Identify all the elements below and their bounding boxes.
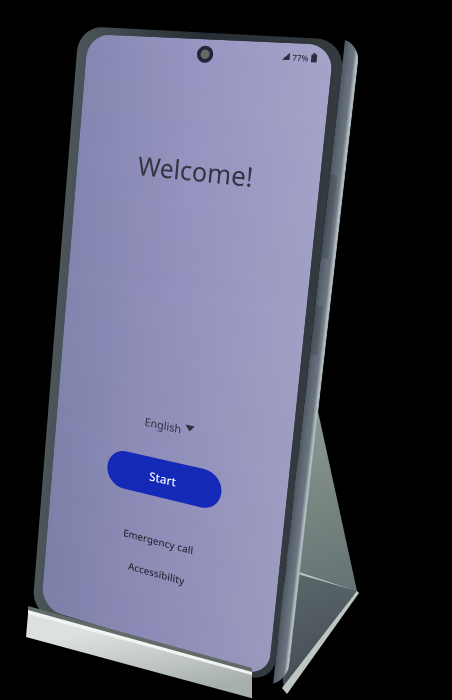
- button[interactable]: [0, 0, 452, 700]
